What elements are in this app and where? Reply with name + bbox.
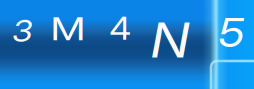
staticText: 3	[13, 13, 31, 49]
staticText: 4	[110, 10, 129, 47]
staticText: M	[54, 9, 82, 48]
staticText: N	[152, 11, 188, 69]
staticText: 5	[220, 10, 242, 56]
